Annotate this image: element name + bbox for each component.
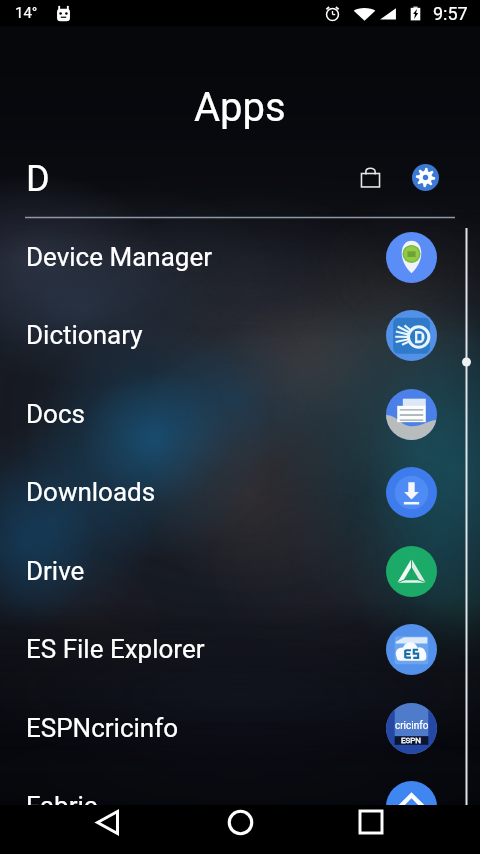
- button[interactable]: Recent apps: [347, 798, 395, 846]
- button[interactable]: Docs: [0, 374, 480, 453]
- staticText: cricinfo: [395, 720, 429, 732]
- staticText: ES File Explorer: [26, 634, 385, 664]
- staticText: Fabric: [26, 791, 385, 821]
- staticText: Apps: [194, 84, 286, 131]
- staticText: Device Manager: [26, 242, 385, 272]
- button[interactable]: Fabric: [0, 766, 480, 845]
- button[interactable]: Drive: [0, 531, 480, 610]
- button[interactable]: Settings: [403, 155, 447, 199]
- button[interactable]: Device Manager: [0, 217, 480, 296]
- staticText: Docs: [26, 399, 385, 429]
- button[interactable]: ESPNcricinfo: [0, 688, 480, 767]
- staticText: Dictionary: [26, 320, 385, 350]
- staticText: ESPNcricinfo: [26, 713, 385, 743]
- button[interactable]: Dictionary: [0, 295, 480, 374]
- staticText: ESPN: [401, 736, 422, 745]
- button[interactable]: Downloads: [0, 452, 480, 531]
- staticText: Downloads: [26, 477, 385, 507]
- button[interactable]: ES File Explorer: [0, 609, 480, 688]
- staticText: 14°: [15, 4, 38, 22]
- button[interactable]: Home: [216, 798, 264, 846]
- button[interactable]: Play Store: [348, 155, 392, 199]
- staticText: Drive: [26, 556, 385, 586]
- staticText: 9:57: [433, 3, 468, 24]
- button[interactable]: Back: [83, 798, 131, 846]
- staticText: D: [26, 158, 50, 200]
